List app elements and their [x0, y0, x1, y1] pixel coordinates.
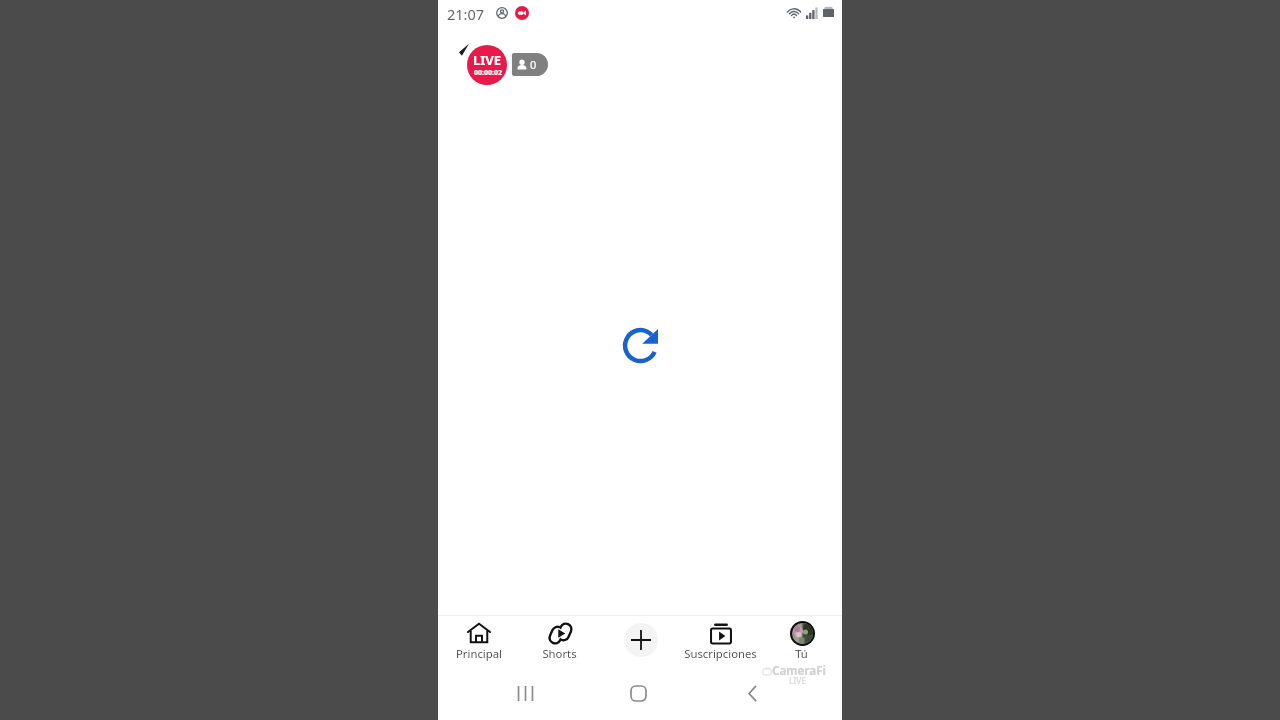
staticText: 21:07 [447, 4, 485, 24]
button[interactable]: Principal [438, 616, 519, 676]
button[interactable]: 0 [512, 53, 548, 76]
staticText: LIVE [789, 675, 807, 687]
button[interactable]: LIVE [467, 45, 507, 85]
staticText: Principal [456, 646, 502, 661]
button[interactable]: Tú [761, 616, 842, 676]
staticText: Shorts [542, 646, 577, 661]
button[interactable]: Inicio [616, 671, 660, 715]
staticText: LIVE [473, 51, 502, 69]
staticText: Tú [795, 646, 808, 661]
button[interactable]: Atrás [730, 671, 774, 715]
button[interactable]: Recientes [503, 671, 547, 715]
staticText: CameraFi [772, 663, 826, 679]
staticText: 00:00:02 [474, 68, 502, 78]
button[interactable]: Suscripciones [680, 616, 761, 676]
staticText: Suscripciones [684, 646, 757, 661]
staticText: 0 [530, 57, 537, 72]
button[interactable]: Shorts [519, 616, 600, 676]
button[interactable]: Recargar [616, 322, 664, 370]
button[interactable]: Crear [600, 616, 681, 676]
